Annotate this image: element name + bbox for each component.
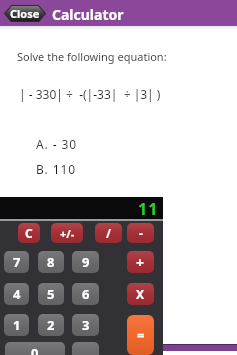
button[interactable]: 7	[4, 251, 29, 273]
button[interactable]: 3	[72, 314, 99, 336]
staticText: -	[139, 225, 143, 241]
staticText: =	[137, 326, 145, 344]
button[interactable]: 2	[38, 314, 64, 336]
button[interactable]: -	[127, 223, 154, 243]
staticText: 3	[82, 316, 90, 334]
staticText: X	[136, 286, 145, 302]
staticText: 11	[138, 198, 159, 220]
staticText: Calculator	[52, 5, 124, 24]
staticText: .	[84, 344, 88, 355]
staticText: +/-	[60, 226, 75, 241]
staticText: 6	[82, 285, 90, 303]
button[interactable]: C	[18, 223, 40, 243]
button[interactable]: 5	[38, 283, 64, 305]
button[interactable]: Close	[4, 5, 46, 22]
button[interactable]: 0	[5, 342, 65, 355]
staticText: 8	[47, 253, 55, 271]
staticText: Solve the following equation:	[17, 49, 167, 64]
staticText: /	[106, 225, 111, 241]
button[interactable]: =	[127, 315, 154, 355]
staticText: Close	[10, 6, 40, 21]
button[interactable]: 4	[4, 283, 29, 305]
staticText: B. 110	[36, 161, 77, 177]
staticText: 5	[47, 285, 55, 303]
button[interactable]: 9	[72, 251, 99, 273]
staticText: +	[136, 253, 145, 272]
button[interactable]: 6	[72, 283, 99, 305]
button[interactable]: /	[95, 223, 122, 243]
button[interactable]: 8	[38, 251, 64, 273]
staticText: 4	[13, 285, 21, 303]
staticText: A. - 30	[36, 136, 78, 152]
button[interactable]: +/-	[51, 223, 83, 243]
staticText: 0	[31, 344, 39, 355]
staticText: 7	[13, 253, 21, 271]
staticText: C	[25, 225, 33, 241]
staticText: 2	[47, 316, 55, 334]
button[interactable]: A. - 30	[36, 136, 78, 152]
button[interactable]: .	[72, 342, 99, 355]
staticText: 9	[82, 253, 90, 271]
button[interactable]: B. 110	[36, 161, 77, 177]
staticText: 1	[13, 316, 21, 334]
button[interactable]: +	[127, 251, 154, 273]
button[interactable]: 1	[4, 314, 29, 336]
staticText: | - 330| ÷ -(|-33| ÷ |3| )	[19, 86, 161, 102]
button[interactable]: X	[127, 283, 154, 305]
